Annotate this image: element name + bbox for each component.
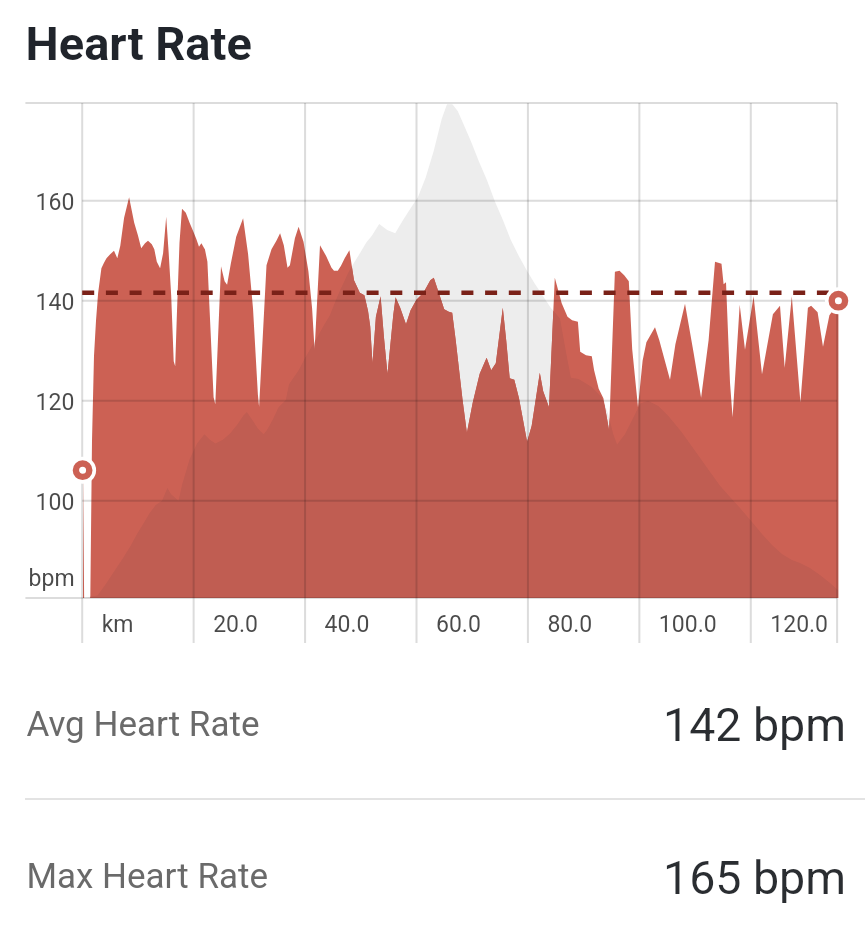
button[interactable]: Heart rate chart	[0, 76, 865, 650]
button[interactable]	[0, 685, 865, 762]
button[interactable]	[0, 763, 865, 840]
